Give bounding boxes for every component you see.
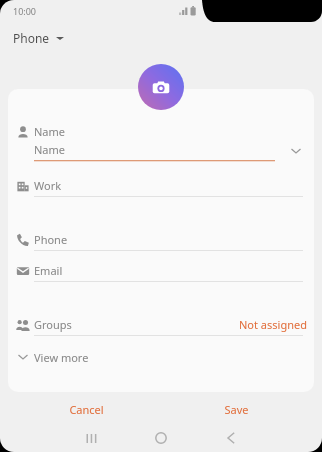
button[interactable]: Groups <box>8 311 314 339</box>
staticText: Save <box>224 402 249 417</box>
button[interactable]: Name <box>8 118 314 146</box>
staticText: Phone <box>34 232 68 247</box>
staticText: Work <box>34 178 62 193</box>
button[interactable]: Name <box>8 137 314 165</box>
staticText: Cancel <box>69 402 104 417</box>
button[interactable]: Work <box>8 172 314 200</box>
button[interactable]: Recent apps <box>74 424 106 452</box>
staticText: View more <box>34 350 89 365</box>
button[interactable]: Back <box>215 424 247 452</box>
button[interactable]: Phone <box>8 226 314 254</box>
button[interactable]: Cancel <box>58 396 114 422</box>
staticText: Name <box>34 124 66 139</box>
staticText: Name <box>34 142 66 157</box>
staticText: Phone <box>13 30 50 46</box>
button[interactable]: Expand name fields <box>284 139 308 163</box>
staticText: 10:00 <box>13 5 37 17</box>
staticText: Email <box>34 263 63 278</box>
staticText: Not assigned <box>239 317 307 332</box>
button[interactable]: Email <box>8 257 314 285</box>
staticText: Groups <box>34 317 72 332</box>
button[interactable]: Add photo <box>138 64 184 110</box>
button[interactable]: Home <box>145 424 177 452</box>
button[interactable]: Save <box>212 396 260 422</box>
button[interactable]: View more <box>8 344 314 370</box>
button[interactable]: Phone <box>11 27 66 49</box>
